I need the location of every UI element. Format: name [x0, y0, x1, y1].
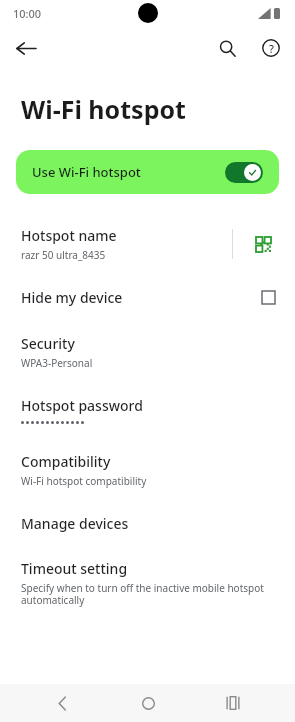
button[interactable]: Compatibility	[0, 439, 295, 501]
staticText: 10:00	[13, 6, 42, 21]
button[interactable]: Home	[124, 684, 172, 722]
staticText: Manage devices	[21, 514, 129, 533]
staticText: ?	[269, 41, 274, 56]
staticText: Specify when to turn off the inactive mo…	[21, 581, 277, 607]
button[interactable]: Security	[0, 321, 295, 383]
staticText: Use Wi-Fi hotspot	[32, 163, 141, 181]
button[interactable]: Hide my device	[0, 274, 295, 321]
button[interactable]: Back	[8, 30, 44, 66]
button[interactable]: Hotspot name	[0, 216, 295, 274]
button[interactable]: Back	[38, 684, 86, 722]
button[interactable]: Help	[253, 30, 289, 66]
staticText: Security	[21, 334, 75, 353]
staticText: Compatibility	[21, 452, 111, 471]
staticText: razr 50 ultra_8435	[21, 248, 106, 262]
staticText: Timeout setting	[21, 559, 128, 578]
button[interactable]: Search	[209, 30, 245, 66]
staticText: WPA3-Personal	[21, 356, 93, 370]
button[interactable]: Timeout setting	[0, 546, 295, 620]
staticText: Hotspot name	[21, 226, 117, 245]
button[interactable]: Hotspot password	[0, 383, 295, 439]
button[interactable]: Recent apps	[209, 684, 257, 722]
staticText: Hide my device	[21, 288, 262, 307]
button[interactable]: Manage devices	[0, 501, 295, 546]
staticText: Wi-Fi hotspot	[21, 92, 186, 126]
button[interactable]: Share hotspot QR code	[247, 228, 279, 260]
button[interactable]: Use Wi-Fi hotspot	[16, 150, 279, 194]
staticText: Hotspot password	[21, 396, 143, 415]
staticText: Wi-Fi hotspot compatibility	[21, 474, 147, 488]
